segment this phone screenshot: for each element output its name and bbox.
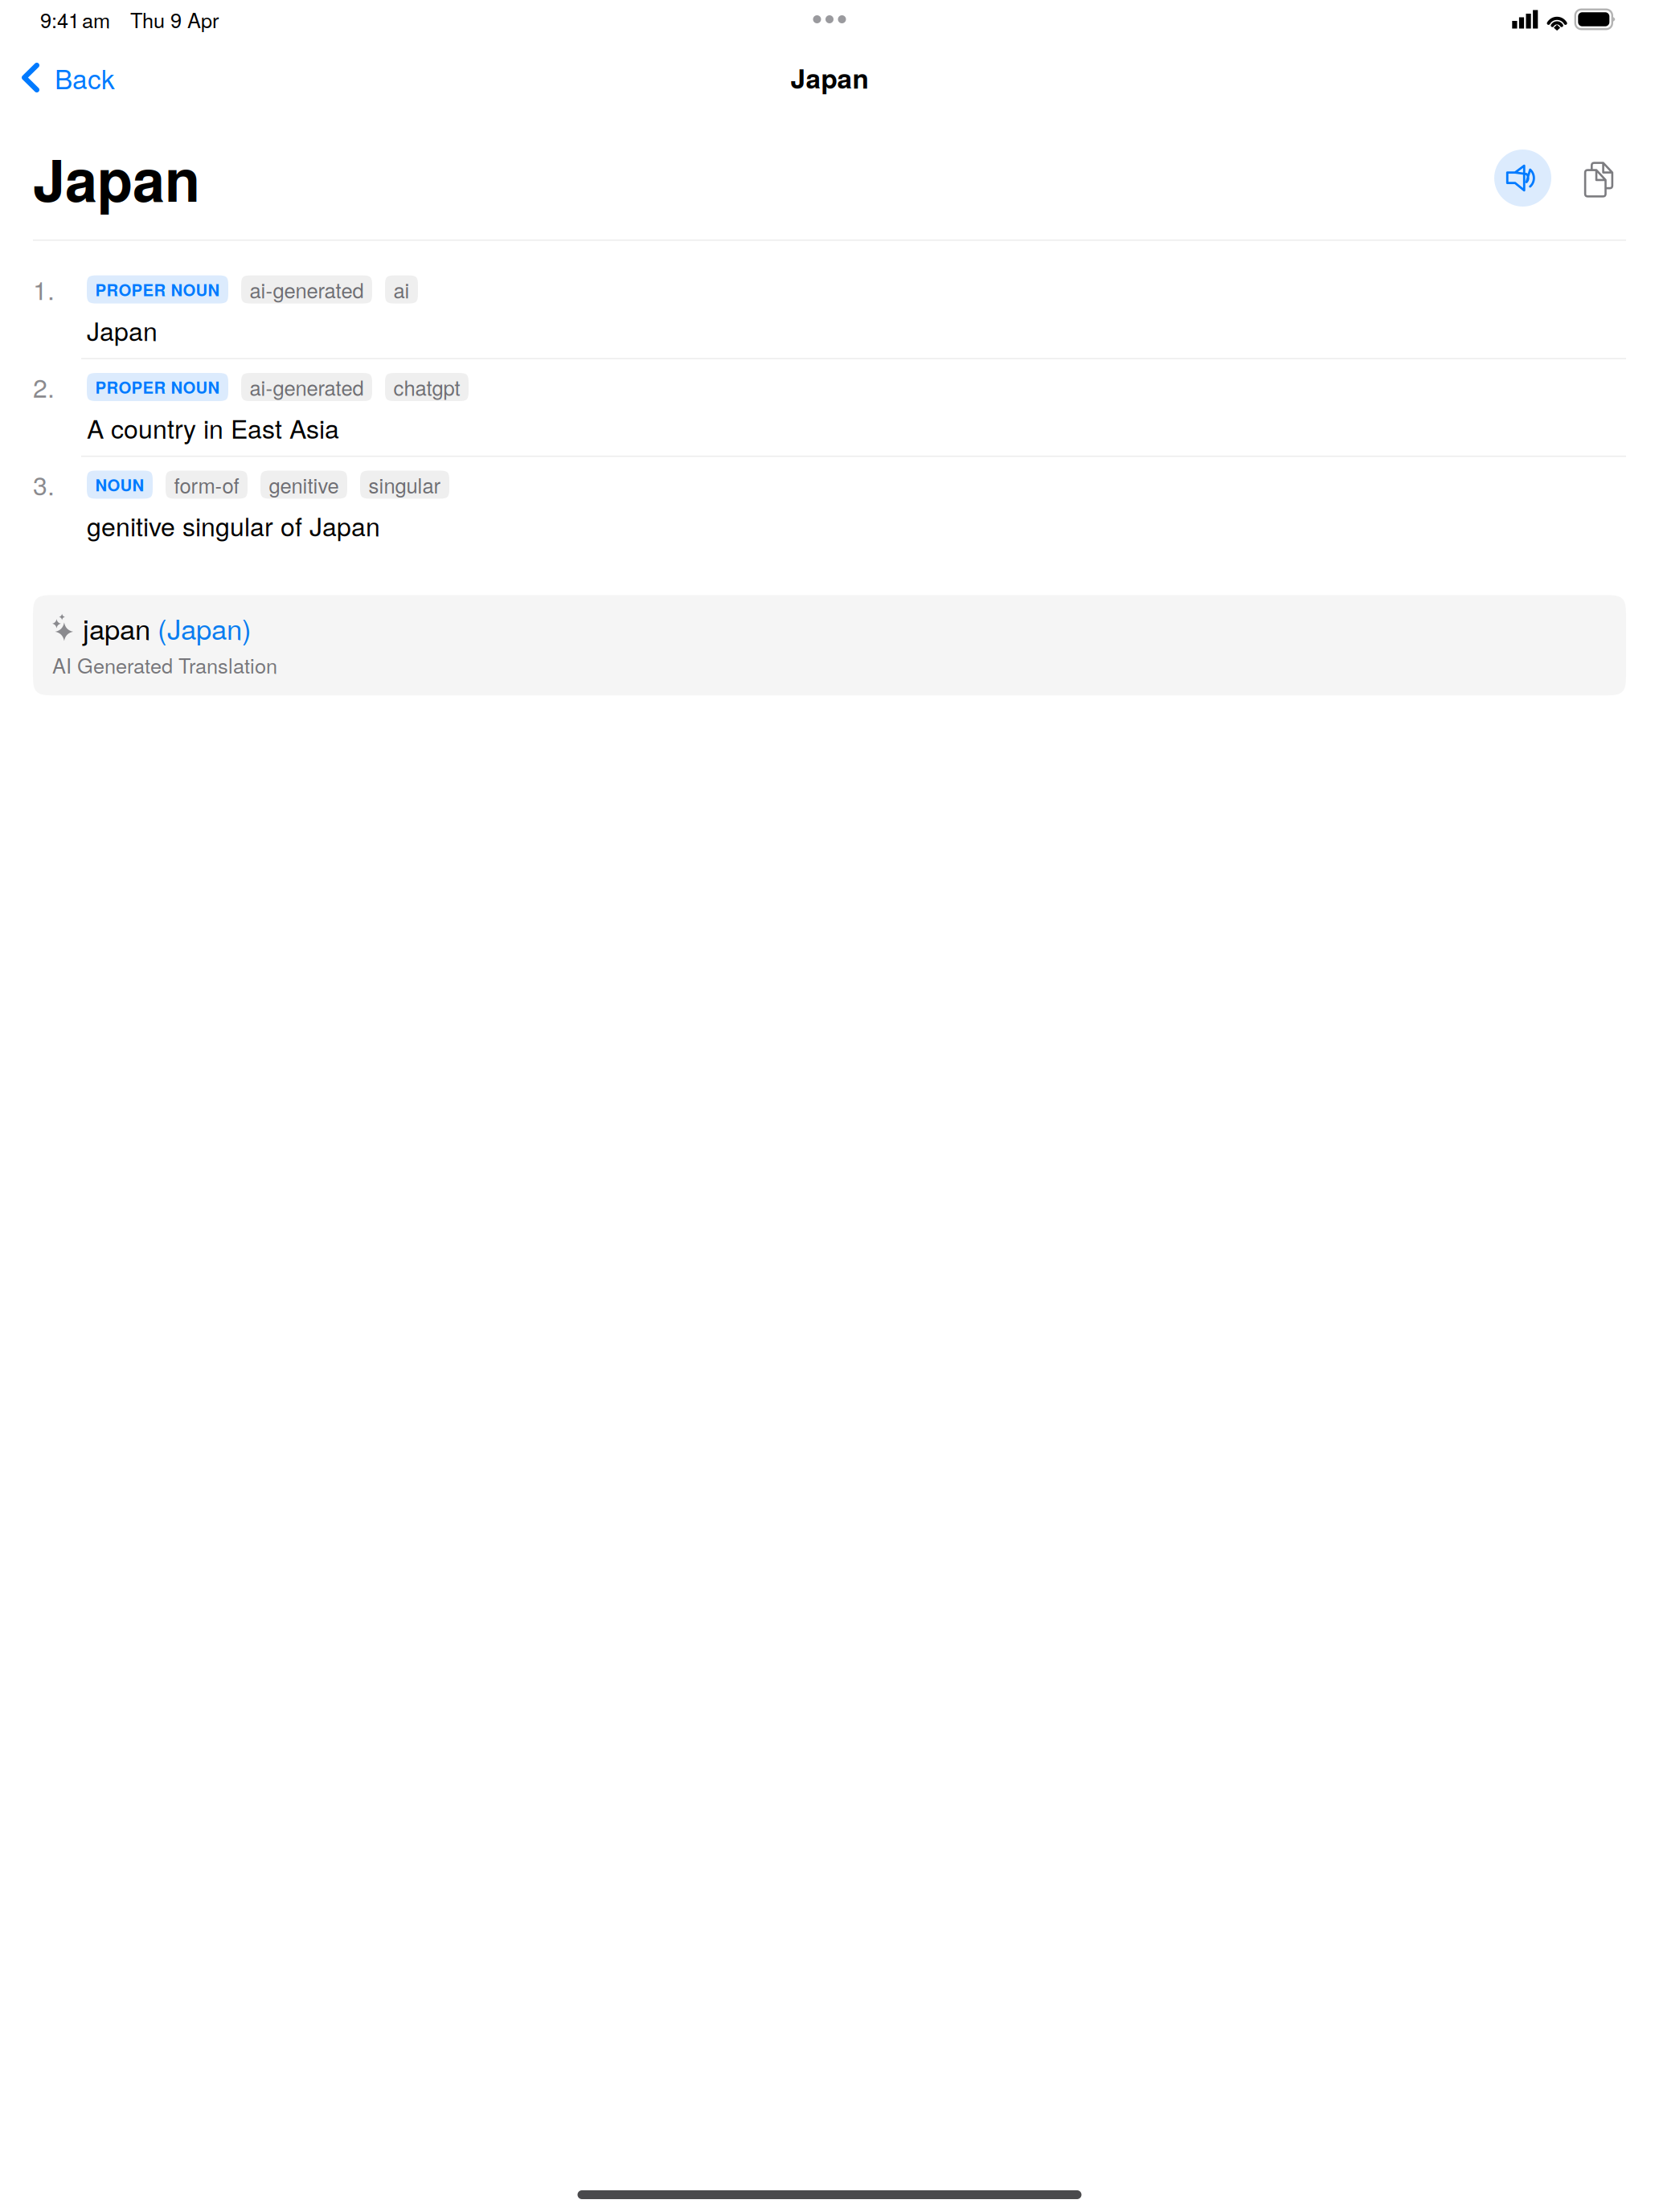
staticText: ai <box>393 275 410 304</box>
button[interactable]: japan <box>33 595 1626 695</box>
staticText: chatgpt <box>393 372 460 402</box>
button[interactable]: Pronounce <box>1494 150 1551 207</box>
staticText: genitive singular of Japan <box>87 507 380 544</box>
staticText: 2. <box>33 368 55 405</box>
staticText: PROPER NOUN <box>95 375 220 399</box>
button[interactable]: Copy <box>1571 150 1627 207</box>
staticText: Japan <box>33 137 200 219</box>
staticText: 9:41 <box>40 5 80 34</box>
staticText: (Japan) <box>158 608 252 648</box>
staticText: japan <box>83 608 150 648</box>
staticText: Japan <box>791 58 868 97</box>
staticText: ai-generated <box>250 275 364 304</box>
staticText: genitive <box>269 470 339 499</box>
staticText: Thu 9 Apr <box>130 5 219 34</box>
button[interactable]: Back <box>0 51 129 104</box>
staticText: AI Generated Translation <box>52 650 277 679</box>
staticText: 3. <box>33 466 55 503</box>
staticText: Back <box>55 58 115 97</box>
staticText: ai-generated <box>250 372 364 402</box>
staticText: singular <box>369 470 441 499</box>
staticText: 1. <box>33 271 55 307</box>
staticText: Japan <box>87 312 158 348</box>
staticText: A country in East Asia <box>87 409 339 446</box>
staticText: form-of <box>174 470 239 499</box>
staticText: PROPER NOUN <box>95 278 220 301</box>
staticText: NOUN <box>95 473 144 496</box>
staticText: am <box>82 5 110 34</box>
